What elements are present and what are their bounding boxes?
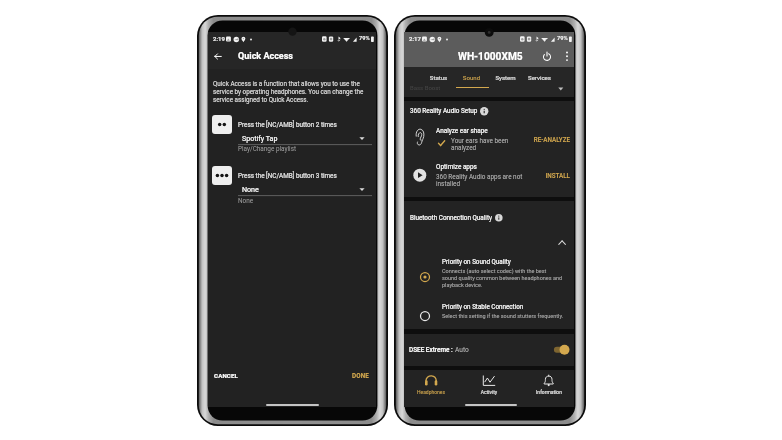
staticText: None <box>238 197 254 205</box>
button[interactable]: Sound <box>455 70 488 85</box>
button[interactable]: Information <box>480 107 490 117</box>
staticText: Optimize apps <box>436 163 477 171</box>
button[interactable]: Headphones <box>403 370 459 403</box>
button[interactable] <box>404 254 574 298</box>
button[interactable]: INSTALL <box>540 168 570 179</box>
staticText: Analyze ear shape <box>436 127 488 135</box>
staticText: 360 Reality Audio Setup <box>410 107 478 115</box>
button[interactable]: Collapse section <box>558 238 571 249</box>
staticText: service assigned to Quick Access. <box>213 96 309 103</box>
button[interactable]: CANCEL <box>210 366 242 381</box>
staticText: 2:19 <box>213 35 225 42</box>
staticText: sound quality common between headphones … <box>442 275 563 281</box>
button[interactable]: Optimize apps <box>413 169 427 183</box>
button[interactable] <box>404 299 574 329</box>
staticText: Status <box>422 74 455 81</box>
staticText: Headphones <box>403 389 459 395</box>
button[interactable]: Activity <box>461 370 517 403</box>
button[interactable]: Back <box>209 47 226 63</box>
staticText: 79% <box>359 35 370 42</box>
button[interactable]: Headphone button icon <box>212 166 232 185</box>
staticText: RE-ANALYZE <box>530 136 570 143</box>
staticText: None <box>242 185 259 193</box>
staticText: System <box>489 74 522 81</box>
staticText: Quick Access is a function that allows y… <box>213 80 360 87</box>
staticText: analyzed <box>451 144 477 152</box>
staticText: DSEE Extreme : <box>409 346 453 354</box>
staticText: DONE <box>352 372 370 379</box>
staticText: Services <box>523 74 556 81</box>
button[interactable]: Headphone button icon <box>212 115 232 134</box>
staticText: Your ears have been <box>451 137 509 145</box>
staticText: Spotify Tap <box>242 134 278 142</box>
button[interactable]: Services <box>523 70 556 85</box>
staticText: Sound <box>455 74 488 81</box>
staticText: CANCEL <box>214 372 239 379</box>
button[interactable]: Information <box>495 214 505 224</box>
staticText: playback device. <box>442 282 483 288</box>
staticText: INSTALL <box>540 172 570 179</box>
staticText: Priority on Sound Quality <box>442 258 511 265</box>
staticText: Auto <box>455 346 469 354</box>
button[interactable]: DSEE Extreme toggle <box>551 342 571 358</box>
staticText: Press the [NC/AMB] button 2 times <box>238 121 337 128</box>
staticText: service by operating headphones. You can… <box>213 88 364 95</box>
staticText: Bluetooth Connection Quality <box>410 214 492 221</box>
button[interactable]: System <box>489 70 522 85</box>
staticText: WH-1000XM5 <box>458 51 523 63</box>
button[interactable]: Spotify Tap <box>238 133 372 149</box>
button[interactable]: More options <box>561 47 573 63</box>
button[interactable]: RE-ANALYZE <box>530 132 570 143</box>
button[interactable]: DONE <box>349 366 374 381</box>
staticText: Activity <box>461 389 517 395</box>
button[interactable]: Status <box>422 70 455 85</box>
staticText: 79% <box>557 35 568 42</box>
staticText: 2:17 <box>409 35 421 42</box>
staticText: Information <box>521 389 577 395</box>
staticText: Press the [NC/AMB] button 3 times <box>238 172 337 179</box>
staticText: 360 Reality Audio apps are not <box>436 173 523 181</box>
staticText: Priority on Stable Connection <box>442 303 524 310</box>
staticText: Quick Access <box>238 51 293 62</box>
staticText: Connects (auto select codec) with the be… <box>442 268 547 274</box>
button[interactable]: Power <box>539 47 555 63</box>
staticText: Select this setting if the sound stutter… <box>442 313 564 319</box>
staticText: Play/Change playlist <box>238 145 297 153</box>
button[interactable]: Information <box>521 370 577 403</box>
staticText: Bass Boost <box>410 84 441 91</box>
button[interactable]: None <box>238 184 372 200</box>
staticText: installed <box>436 180 461 188</box>
